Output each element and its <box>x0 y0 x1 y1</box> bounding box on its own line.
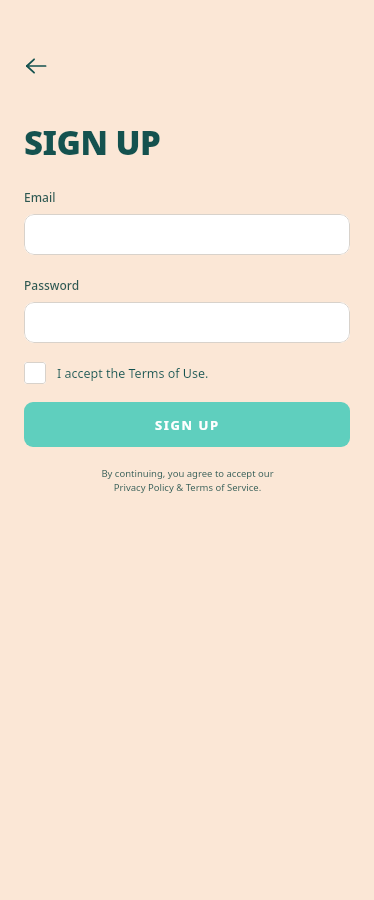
button[interactable] <box>24 302 350 343</box>
staticText: I accept the Terms of Use. <box>57 365 209 382</box>
staticText: By continuing, you agree to accept our P… <box>101 467 274 494</box>
staticText: Email <box>24 189 56 205</box>
button[interactable]: Back <box>16 46 56 86</box>
staticText: SIGN UP <box>155 416 220 434</box>
button[interactable]: SIGN UP <box>24 402 350 447</box>
button[interactable]: I accept the Terms of Use. <box>24 362 209 384</box>
staticText: SIGN UP <box>24 120 161 165</box>
button[interactable] <box>24 214 350 255</box>
staticText: Password <box>24 277 80 293</box>
